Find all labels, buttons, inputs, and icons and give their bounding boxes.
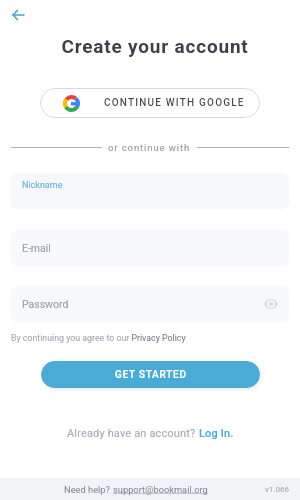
staticText: Log In. <box>199 427 234 440</box>
staticText: CONTINUE WITH GOOGLE <box>104 97 245 109</box>
button[interactable]: Back <box>3 0 33 30</box>
button[interactable]: Show password <box>262 295 280 313</box>
button[interactable]: Already have an account? <box>67 427 234 440</box>
staticText: E-mail <box>22 242 51 254</box>
button[interactable]: CONTINUE WITH GOOGLE <box>40 88 260 118</box>
staticText: Create your account <box>5 35 300 57</box>
staticText: v1.066 <box>265 485 289 494</box>
button[interactable]: E-mail <box>11 230 289 266</box>
staticText: or continue with <box>108 142 191 153</box>
staticText: Need help? <box>64 484 113 495</box>
staticText: By continuing you agree to our Privacy P… <box>11 333 186 343</box>
button[interactable]: GET STARTED <box>41 361 260 388</box>
button[interactable]: Password <box>11 286 289 322</box>
staticText: Nickname <box>22 180 63 191</box>
button[interactable]: Nickname <box>11 173 289 209</box>
staticText: GET STARTED <box>115 369 187 381</box>
button[interactable]: support@bookmail.org <box>113 484 208 495</box>
staticText: Password <box>22 298 69 310</box>
staticText: Already have an account? <box>67 427 199 440</box>
